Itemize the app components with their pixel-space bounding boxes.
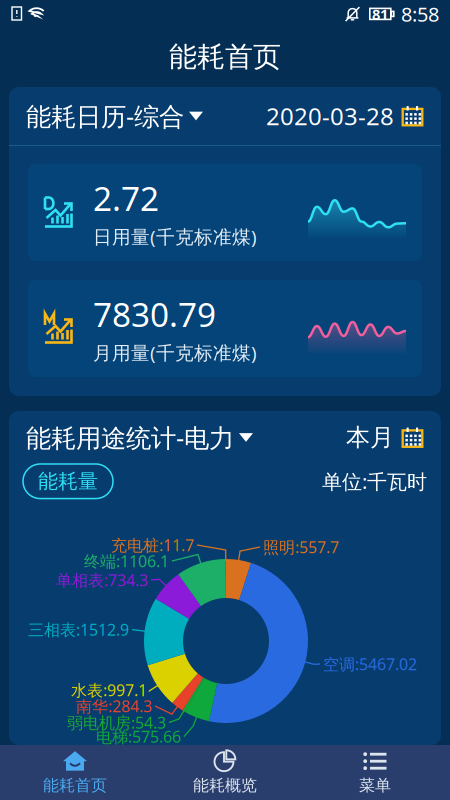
staticText: 81	[372, 4, 388, 24]
staticText: 照明:557.7	[263, 536, 339, 558]
staticText: 本月	[346, 423, 394, 452]
staticText: 电梯:575.66	[96, 726, 181, 747]
staticText: 终端:1106.1	[84, 550, 169, 572]
staticText: 2.72	[93, 176, 159, 220]
button[interactable]: 能耗概览	[150, 745, 300, 800]
staticText: 月用量(千克标准煤)	[93, 340, 257, 365]
button[interactable]: 本月	[346, 414, 424, 461]
staticText: 7830.79	[93, 292, 216, 336]
staticText: 能耗首页	[43, 776, 107, 795]
staticText: 水表:997.1	[71, 679, 147, 701]
staticText: 日用量(千克标准煤)	[93, 224, 257, 249]
staticText: 南华:284.3	[76, 695, 152, 717]
staticText: 空调:5467.02	[323, 653, 417, 675]
staticText: 三相表:1512.9	[28, 619, 129, 640]
button[interactable]: 能耗首页	[0, 745, 150, 800]
button[interactable]: 能耗日历-综合	[26, 90, 203, 142]
button[interactable]: 能耗用途统计-电力	[26, 412, 253, 463]
button[interactable]: 能耗量	[23, 464, 113, 499]
staticText: 8:58	[401, 1, 439, 27]
staticText: 能耗概览	[193, 776, 257, 795]
staticText: 能耗用途统计-电力	[26, 421, 234, 454]
staticText: 单位:千瓦时	[322, 468, 427, 495]
staticText: 能耗日历-综合	[26, 99, 184, 133]
staticText: 充电桩:11.7	[111, 534, 194, 556]
staticText: 能耗量	[38, 469, 98, 494]
staticText: 单相表:734.3	[56, 569, 148, 591]
button[interactable]: 2020-03-28	[266, 91, 424, 141]
button[interactable]: 菜单	[300, 745, 450, 800]
staticText: 能耗首页	[169, 40, 281, 74]
staticText: 弱电机房:54.3	[67, 712, 166, 733]
staticText: 2020-03-28	[266, 100, 394, 132]
staticText: 菜单	[359, 776, 391, 795]
